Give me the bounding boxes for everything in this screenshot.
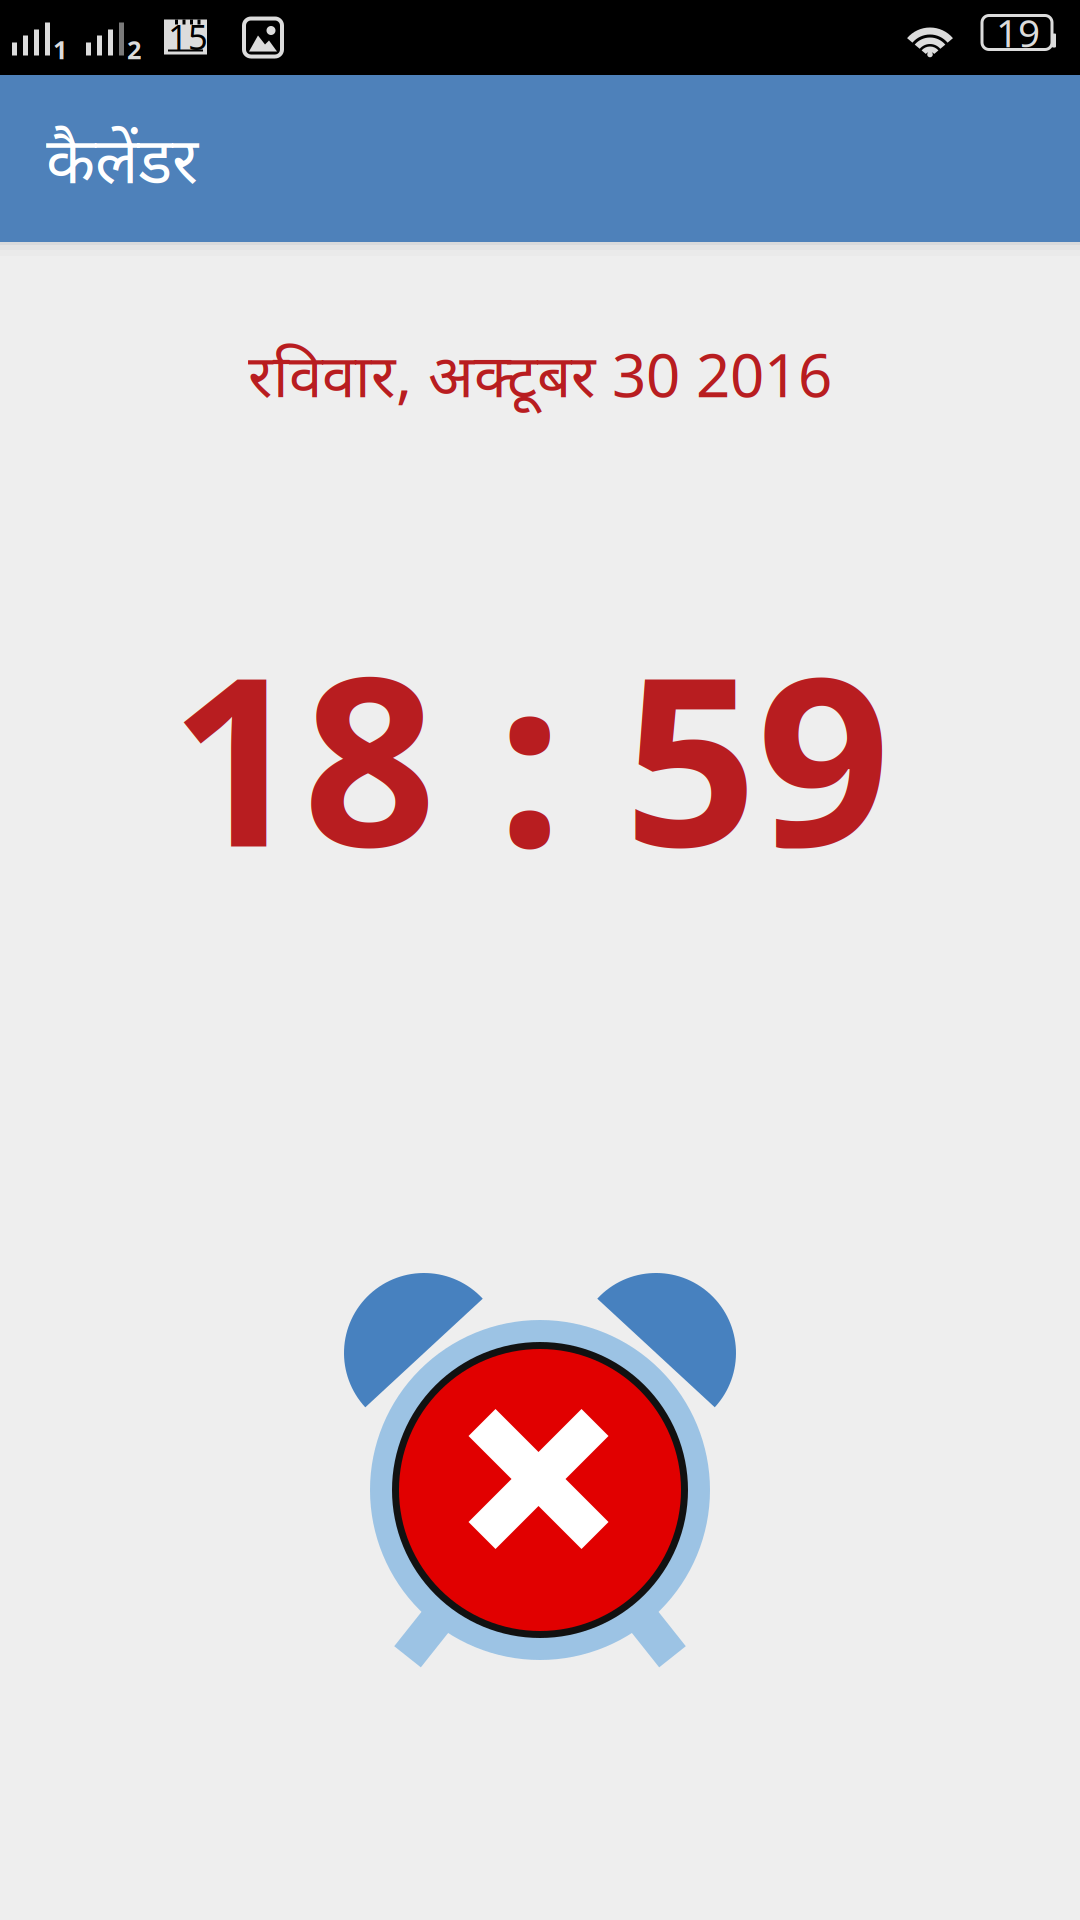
staticText: कैलेंडर [46,116,198,201]
staticText: 1 [53,32,67,66]
button[interactable]: Alarm off [340,1275,740,1675]
staticText: 18 : 59 [170,601,890,911]
staticText: रविवार, अक्टूबर 30 2016 [248,334,832,414]
staticText: 15 [168,13,208,59]
staticText: 2 [127,32,141,66]
staticText: 19 [996,6,1040,58]
